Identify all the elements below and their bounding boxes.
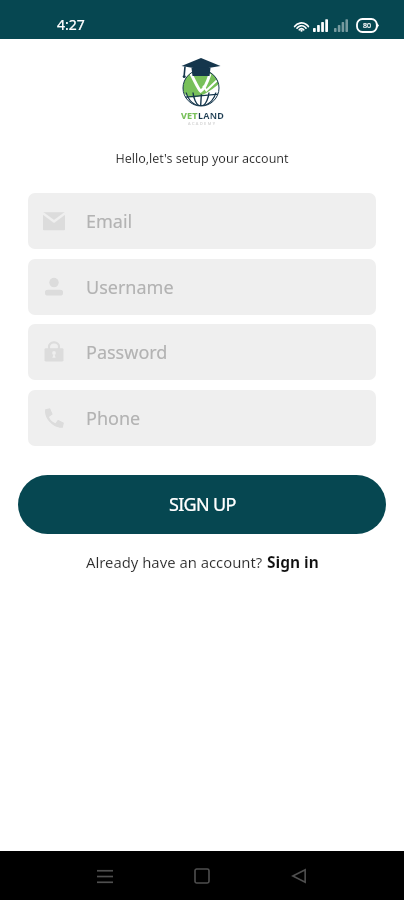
- button[interactable]: Password: [28, 324, 376, 380]
- button[interactable]: Phone: [28, 390, 376, 446]
- staticText: LAND: [198, 109, 224, 121]
- button[interactable]: Email: [28, 193, 376, 249]
- button[interactable]: SIGN UP: [18, 475, 386, 534]
- button[interactable]: Back: [275, 852, 323, 900]
- button[interactable]: Home: [178, 852, 226, 900]
- staticText: Email: [86, 209, 133, 234]
- staticText: Phone: [86, 406, 141, 431]
- staticText: Password: [86, 340, 168, 365]
- button[interactable]: Sign in: [267, 551, 319, 572]
- staticText: Sign in: [267, 551, 319, 572]
- staticText: ACADEMY: [188, 121, 217, 126]
- staticText: Username: [86, 275, 174, 300]
- staticText: Already have an account?: [86, 552, 267, 572]
- staticText: 4:27: [57, 15, 85, 34]
- staticText: SIGN UP: [169, 492, 236, 517]
- button[interactable]: Username: [28, 259, 376, 315]
- staticText: Hello,let's setup your account: [0, 150, 404, 167]
- staticText: VET: [181, 109, 198, 121]
- button[interactable]: Recent apps: [81, 852, 129, 900]
- staticText: 80: [363, 21, 372, 31]
